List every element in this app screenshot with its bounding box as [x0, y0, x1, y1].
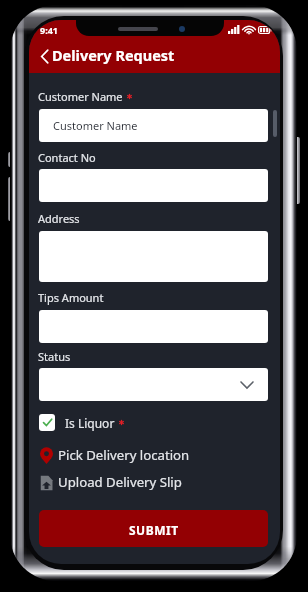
staticText: Upload Delivery Slip	[58, 473, 182, 491]
button[interactable]: Is Liquor	[39, 414, 124, 431]
staticText: Address	[38, 211, 80, 226]
button[interactable]: Pick Delivery location	[39, 446, 190, 464]
staticText: 9:41	[40, 24, 58, 36]
button[interactable]: Back	[36, 46, 55, 67]
staticText: Pick Delivery location	[58, 446, 190, 464]
staticText: Is Liquor	[65, 415, 115, 431]
button[interactable]	[39, 169, 268, 202]
staticText: Delivery Request	[52, 45, 175, 65]
staticText: Status	[38, 349, 71, 364]
button[interactable]: SUBMIT	[39, 510, 268, 547]
button[interactable]: Upload Delivery Slip	[39, 473, 182, 491]
button[interactable]	[39, 310, 268, 343]
staticText: Customer Name	[38, 89, 123, 104]
staticText: Customer Name	[53, 118, 138, 133]
staticText: Tips Amount	[38, 290, 104, 305]
staticText: SUBMIT	[129, 522, 179, 538]
staticText: Contact No	[38, 150, 96, 165]
button[interactable]	[39, 231, 268, 282]
button[interactable]: Customer Name	[39, 109, 268, 142]
button[interactable]: Select status	[39, 368, 268, 401]
